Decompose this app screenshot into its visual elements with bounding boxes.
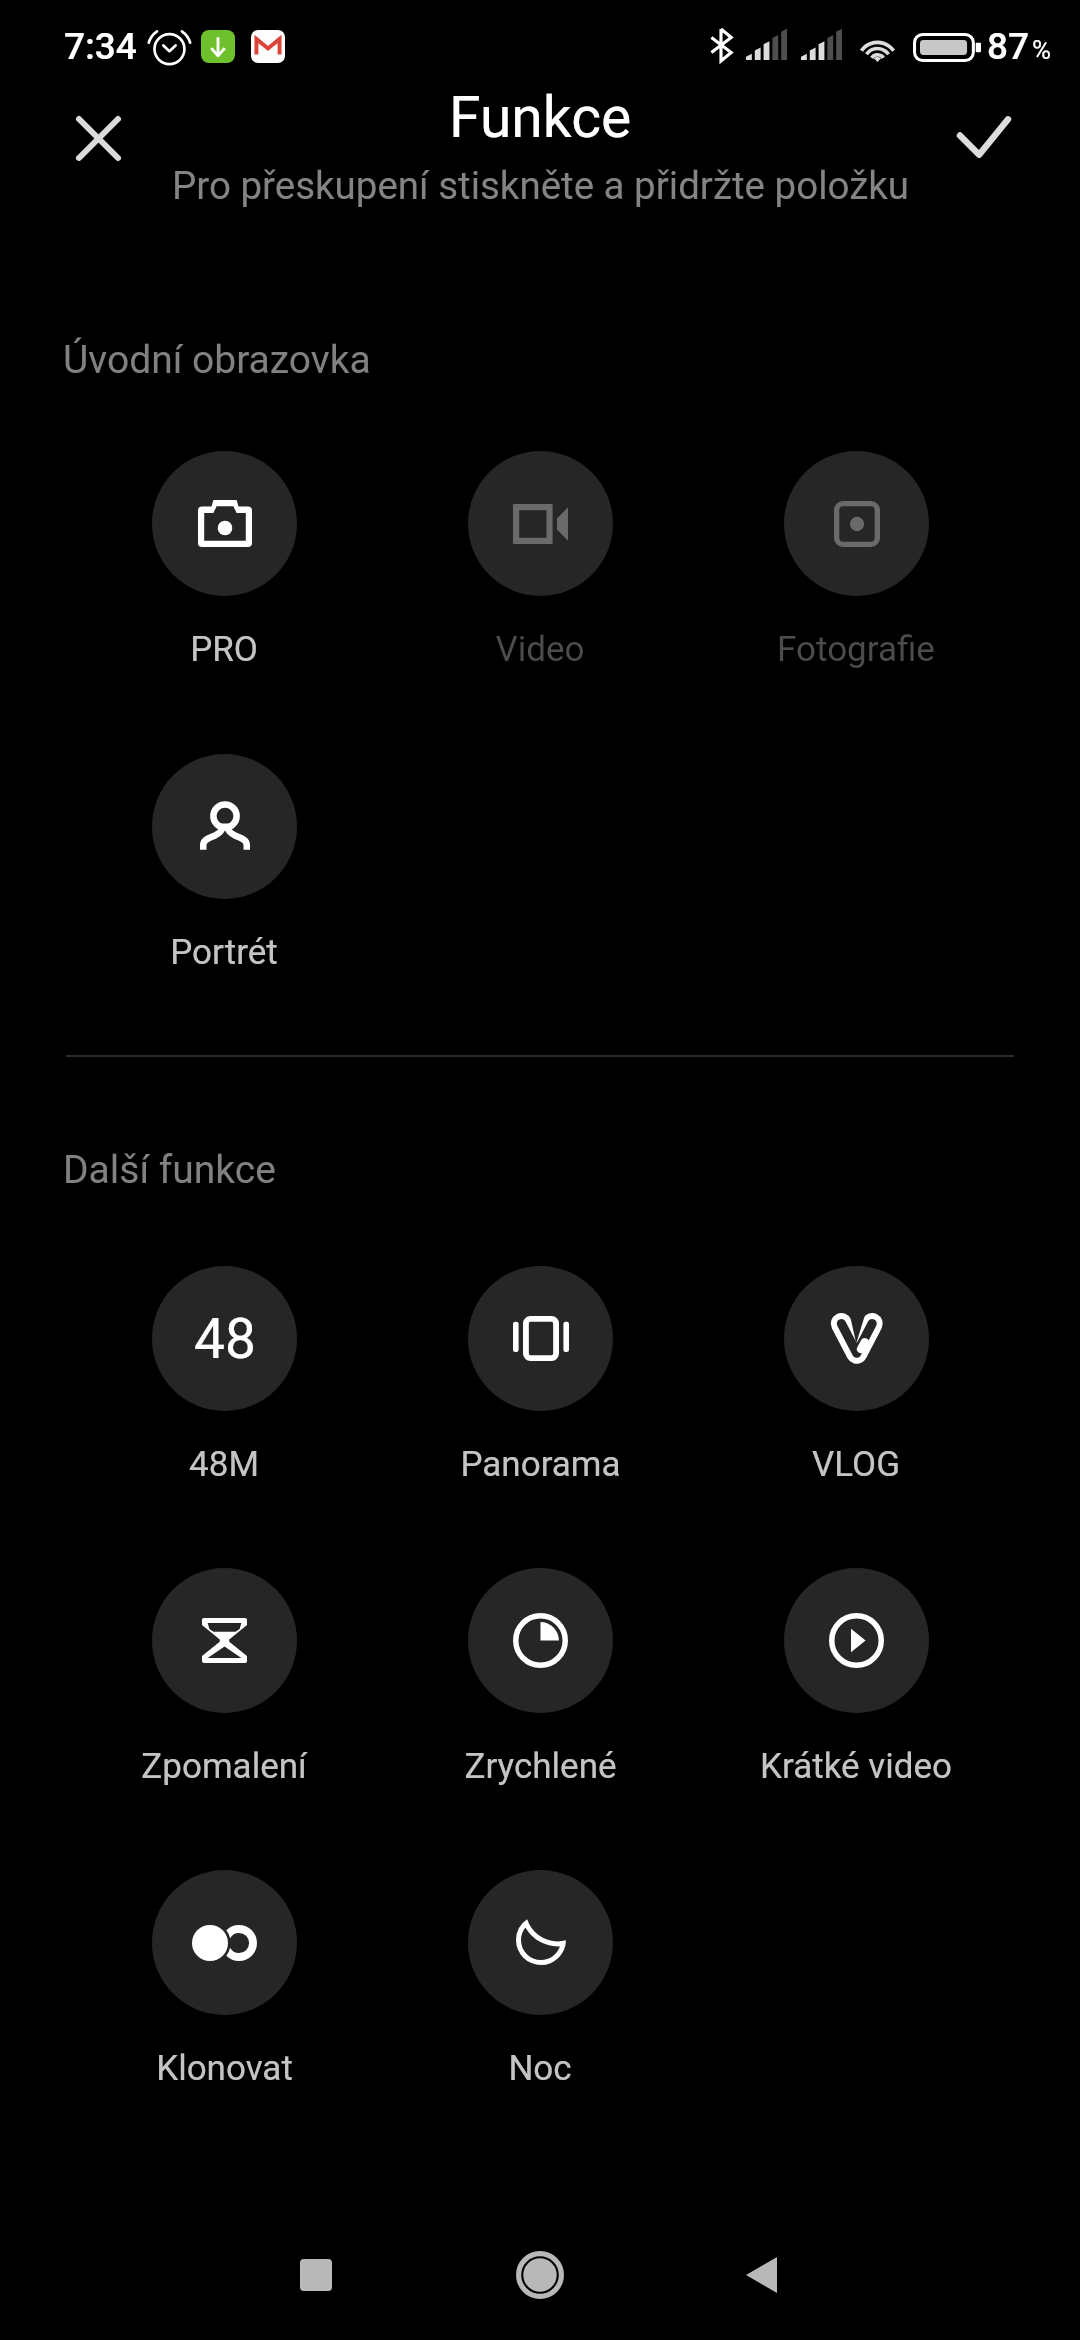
button[interactable]: Zpomalení <box>66 1568 382 1787</box>
button[interactable]: Zrychlené <box>382 1568 698 1787</box>
staticText: 48M <box>189 1444 259 1485</box>
staticText: PRO <box>190 629 258 670</box>
staticText: Pro přeskupení stiskněte a přidržte polo… <box>172 163 909 208</box>
button[interactable]: Recent apps <box>256 2215 376 2335</box>
button[interactable]: Confirm <box>928 82 1040 194</box>
staticText: Panorama <box>460 1444 621 1485</box>
staticText: Úvodní obrazovka <box>63 337 371 383</box>
staticText: 87 <box>987 25 1030 68</box>
button[interactable]: PRO <box>66 451 382 670</box>
staticText: Zpomalení <box>141 1746 307 1787</box>
staticText: Video <box>495 629 585 670</box>
staticText: 7:34 <box>64 25 137 68</box>
button[interactable]: Noc <box>382 1870 698 2089</box>
staticText: Krátké video <box>760 1746 952 1787</box>
staticText: Další funkce <box>63 1147 276 1193</box>
staticText: Klonovat <box>156 2048 293 2089</box>
button[interactable]: Home <box>480 2215 600 2335</box>
button[interactable]: Close <box>42 82 154 194</box>
button[interactable]: Portrét <box>66 754 382 973</box>
button[interactable]: 48 <box>66 1266 382 1485</box>
staticText: Portrét <box>170 932 278 973</box>
staticText: % <box>1032 35 1052 65</box>
button[interactable]: Panorama <box>382 1266 698 1485</box>
staticText: Noc <box>508 2048 572 2089</box>
button[interactable]: Klonovat <box>66 1870 382 2089</box>
button[interactable]: Back <box>701 2215 821 2335</box>
staticText: Zrychlené <box>464 1746 617 1787</box>
staticText: VLOG <box>812 1444 900 1485</box>
staticText: 48 <box>194 1307 256 1371</box>
staticText: Fotografie <box>777 629 935 670</box>
staticText: Funkce <box>449 84 632 151</box>
button[interactable]: Video <box>382 451 698 670</box>
button[interactable]: Krátké video <box>698 1568 1014 1787</box>
button[interactable]: VLOG <box>698 1266 1014 1485</box>
button[interactable]: Fotografie <box>698 451 1014 670</box>
